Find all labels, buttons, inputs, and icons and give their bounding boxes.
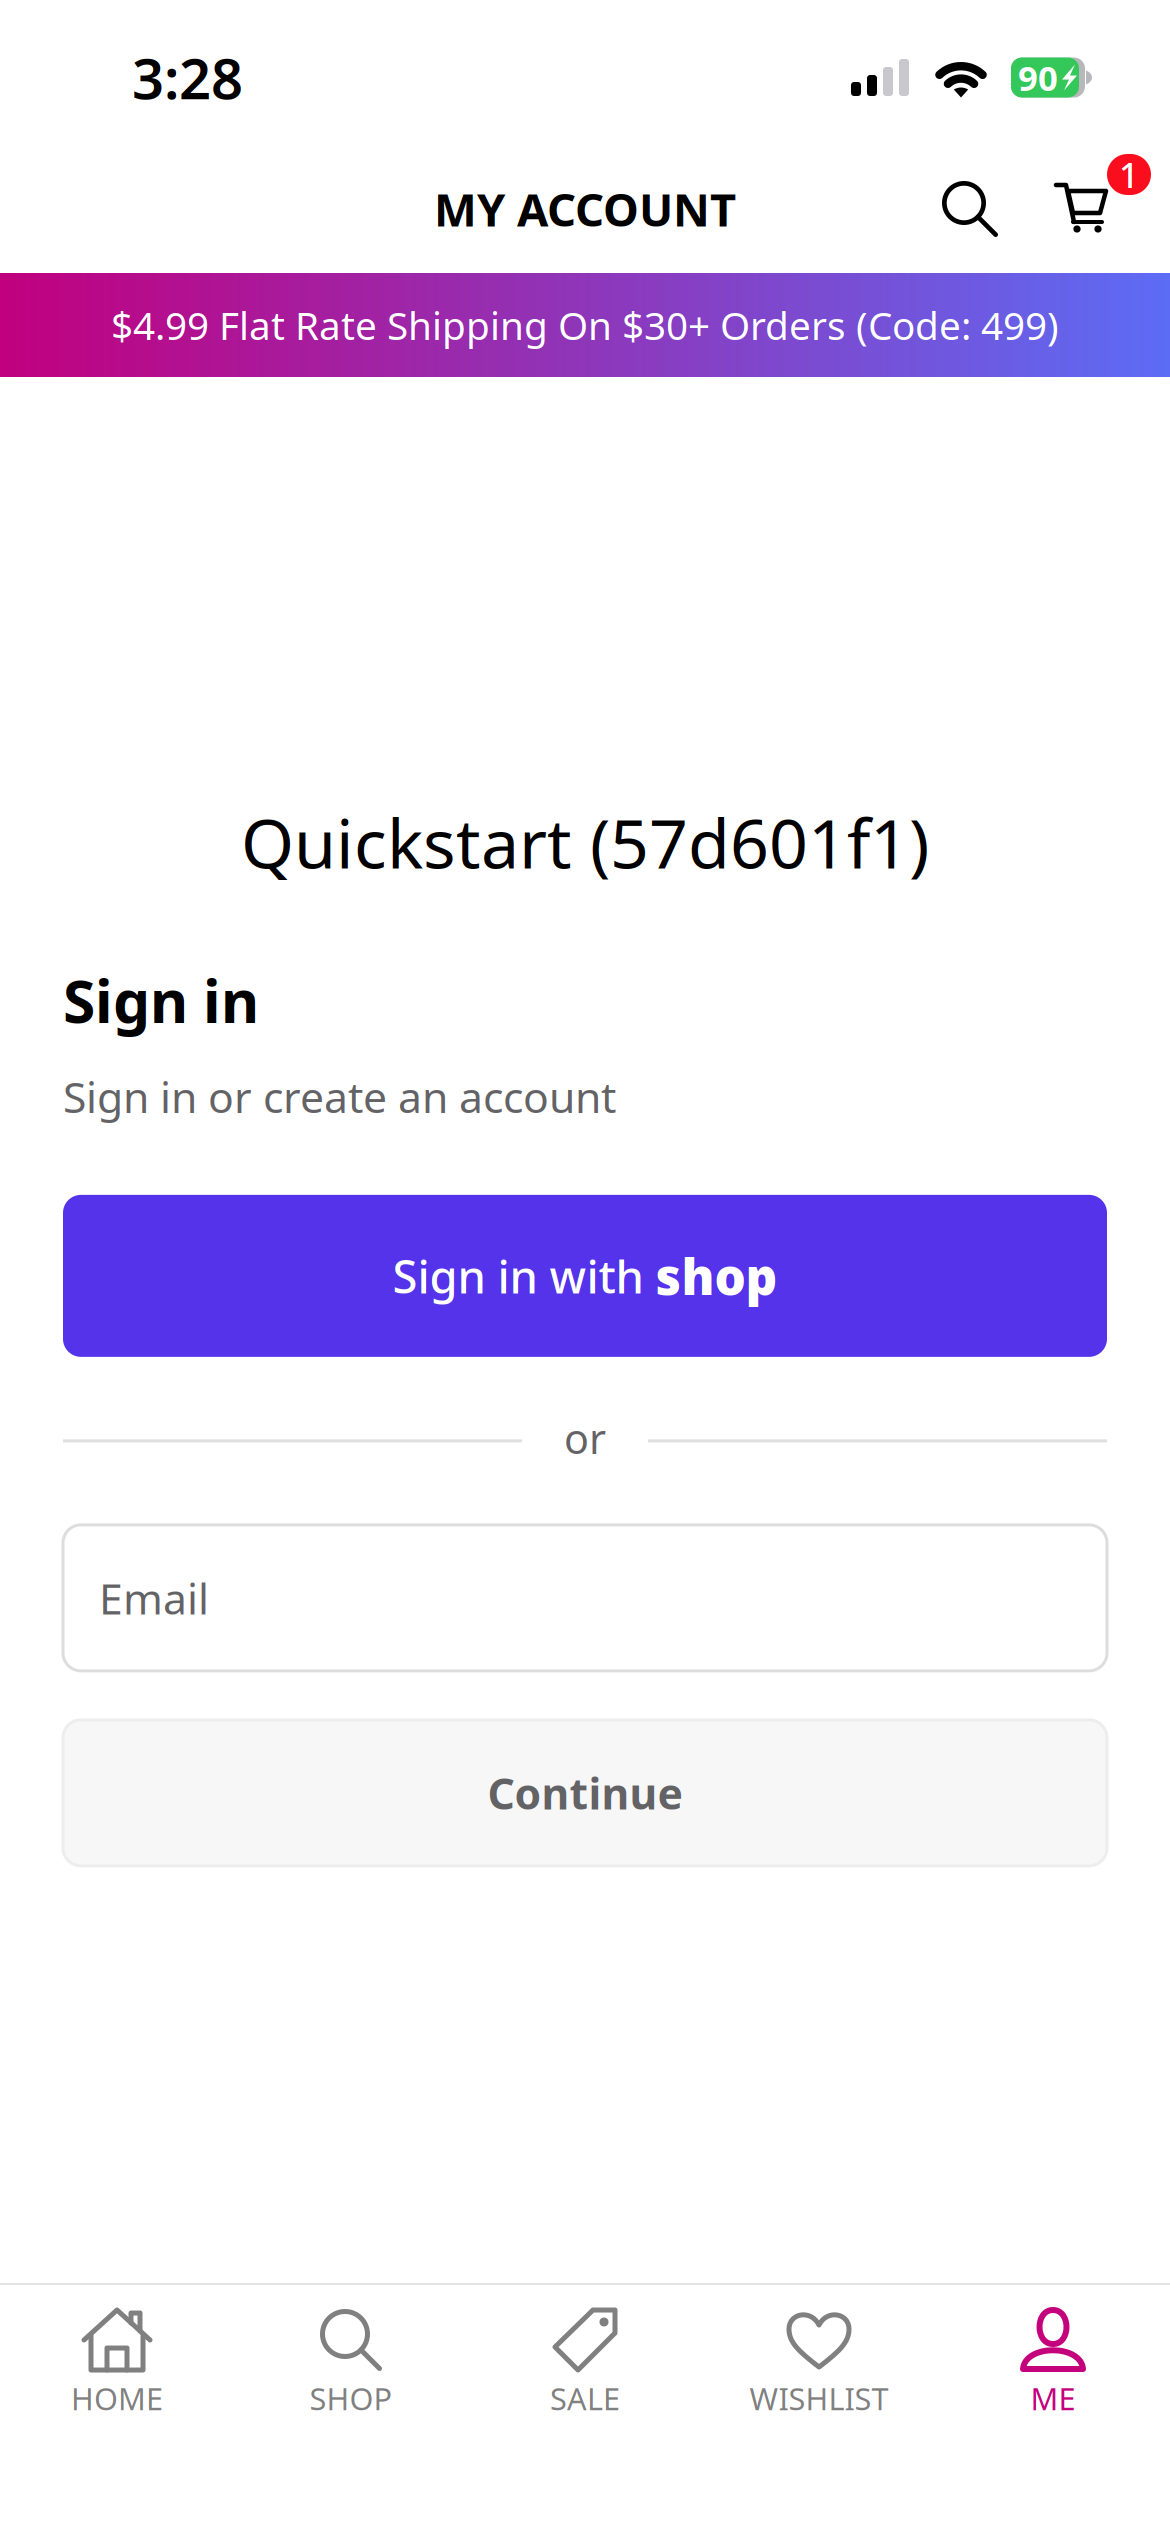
button[interactable]: Continue <box>63 1720 1107 1866</box>
staticText: HOME <box>71 2378 163 2419</box>
staticText: ME <box>1030 2378 1075 2419</box>
staticText: Sign in or create an account <box>63 1068 616 1125</box>
staticText: or <box>564 1410 606 1465</box>
staticText: Quickstart (57d601f1) <box>241 797 929 887</box>
button[interactable]: Cart, 1 item <box>1029 145 1139 273</box>
staticText: $4.99 Flat Rate Shipping On $30+ Orders … <box>111 299 1059 351</box>
staticText: SHOP <box>309 2378 392 2419</box>
staticText: 90 <box>1018 54 1058 100</box>
button[interactable]: ME <box>936 2307 1170 2467</box>
staticText: Sign in with <box>392 1246 655 1306</box>
button[interactable]: HOME <box>0 2307 234 2467</box>
staticText: shop <box>655 1243 777 1309</box>
staticText: WISHLIST <box>749 2378 888 2419</box>
staticText: 1 <box>1119 151 1139 197</box>
button[interactable]: SALE <box>468 2307 702 2467</box>
staticText: MY ACCOUNT <box>434 179 736 239</box>
staticText: Sign in <box>63 961 259 1039</box>
staticText: Continue <box>487 1764 682 1821</box>
button[interactable]: SHOP <box>234 2307 468 2467</box>
staticText: 3:28 <box>132 40 243 115</box>
button[interactable]: WISHLIST <box>702 2307 936 2467</box>
staticText: SALE <box>550 2378 620 2419</box>
staticText: Email <box>99 1569 209 1626</box>
button[interactable]: Sign in with <box>63 1195 1107 1357</box>
button[interactable]: Search <box>919 145 1029 273</box>
